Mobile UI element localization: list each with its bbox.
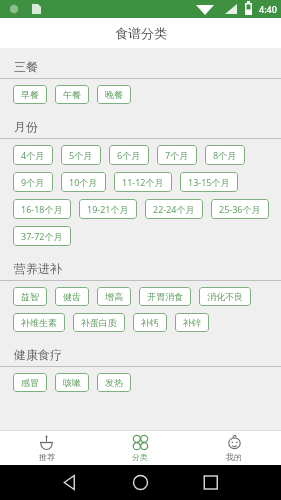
staticText: 补锌	[183, 317, 201, 328]
button[interactable]: 13-15个月	[180, 172, 238, 192]
staticText: 8个月	[213, 149, 237, 161]
staticText: 健齿	[63, 291, 81, 302]
button[interactable]: 开胃消食	[139, 287, 191, 306]
staticText: 5个月	[69, 149, 93, 161]
button[interactable]: 早餐	[13, 85, 47, 104]
staticText: 晚餐	[105, 89, 123, 100]
button[interactable]: 消化不良	[199, 287, 251, 306]
staticText: 开胃消食	[147, 291, 183, 302]
button[interactable]: 补蛋白质	[73, 313, 125, 332]
staticText: 16-18个月	[21, 203, 63, 215]
staticText: 补钙	[141, 317, 159, 328]
staticText: 分类	[132, 452, 148, 462]
button[interactable]: 16-18个月	[13, 199, 71, 219]
staticText: 补蛋白质	[81, 317, 117, 328]
button[interactable]: 补维生素	[13, 313, 65, 332]
button[interactable]: 9个月	[13, 172, 53, 192]
button[interactable]: 补锌	[175, 313, 209, 332]
button[interactable]: 37-72个月	[13, 226, 71, 246]
staticText: 健康食疗	[14, 347, 62, 362]
button[interactable]: 补钙	[133, 313, 167, 332]
button[interactable]: 11-12个月	[114, 172, 172, 192]
staticText: 消化不良	[207, 291, 243, 302]
staticText: 13-15个月	[188, 176, 230, 188]
staticText: 营养进补	[14, 261, 62, 276]
button[interactable]: 我的	[187, 431, 281, 465]
staticText: 11-12个月	[122, 176, 164, 188]
staticText: 早餐	[21, 89, 39, 100]
button[interactable]: 发热	[97, 373, 131, 392]
staticText: 感冒	[21, 377, 39, 388]
staticText: 咳嗽	[63, 377, 81, 388]
staticText: 22-24个月	[153, 203, 195, 215]
button[interactable]: 感冒	[13, 373, 47, 392]
button[interactable]: 益智	[13, 287, 47, 306]
staticText: 10个月	[69, 176, 98, 188]
staticText: 4个月	[21, 149, 45, 161]
button[interactable]: 25-36个月	[211, 199, 269, 219]
button[interactable]: 推荐	[0, 431, 93, 465]
button[interactable]: 8个月	[205, 145, 245, 165]
button[interactable]: 4个月	[13, 145, 53, 165]
staticText: 4:40	[259, 3, 277, 15]
staticText: 食谱分类	[115, 25, 167, 41]
button[interactable]: 7个月	[157, 145, 197, 165]
button[interactable]: 10个月	[61, 172, 106, 192]
staticText: 增高	[105, 291, 123, 302]
staticText: 19-21个月	[87, 203, 129, 215]
button[interactable]: 6个月	[109, 145, 149, 165]
staticText: 37-72个月	[21, 230, 63, 242]
button[interactable]: 22-24个月	[145, 199, 203, 219]
button[interactable]: 增高	[97, 287, 131, 306]
staticText: 我的	[226, 452, 242, 462]
button[interactable]: 分类	[93, 431, 187, 465]
button[interactable]: 咳嗽	[55, 373, 89, 392]
staticText: 午餐	[63, 89, 81, 100]
staticText: 补维生素	[21, 317, 57, 328]
staticText: 发热	[105, 377, 123, 388]
button[interactable]: 健齿	[55, 287, 89, 306]
staticText: 三餐	[14, 59, 38, 74]
staticText: 益智	[21, 291, 39, 302]
button[interactable]: 5个月	[61, 145, 101, 165]
staticText: 6个月	[117, 149, 141, 161]
staticText: 7个月	[165, 149, 189, 161]
staticText: 月份	[14, 119, 38, 134]
staticText: 推荐	[39, 452, 55, 462]
staticText: 9个月	[21, 176, 45, 188]
button[interactable]: 19-21个月	[79, 199, 137, 219]
button[interactable]: 午餐	[55, 85, 89, 104]
staticText: 25-36个月	[219, 203, 261, 215]
button[interactable]: 晚餐	[97, 85, 131, 104]
